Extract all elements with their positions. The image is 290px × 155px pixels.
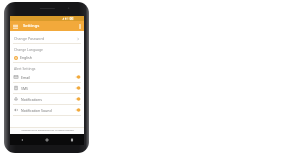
button[interactable]: English xyxy=(10,53,84,62)
button[interactable]: SMS toggle xyxy=(75,85,81,91)
staticText: Email xyxy=(21,75,30,80)
button[interactable]: Back xyxy=(10,134,34,145)
button[interactable]: More options xyxy=(75,21,84,31)
button[interactable]: Notification Sound xyxy=(10,105,84,115)
button[interactable]: Email toggle xyxy=(75,74,81,80)
staticText: Change Password xyxy=(14,36,45,41)
button[interactable]: SMS xyxy=(10,83,84,93)
staticText: SMS xyxy=(21,86,29,91)
staticText: Alert Settings xyxy=(14,66,36,71)
button[interactable]: Open navigation menu xyxy=(10,21,20,31)
button[interactable]: Recent apps xyxy=(59,134,84,145)
staticText: Change Language xyxy=(14,47,43,52)
staticText: Settings xyxy=(23,23,40,29)
button[interactable]: Notifications toggle xyxy=(75,96,81,102)
button[interactable]: Change Password xyxy=(10,34,84,43)
staticText: Notifications xyxy=(21,97,42,102)
staticText: Copyright 2016 available.pvt.ltd. All ri… xyxy=(21,129,74,132)
button[interactable]: Home xyxy=(34,134,59,145)
staticText: English xyxy=(20,55,32,60)
button[interactable]: Notifications xyxy=(10,94,84,104)
button[interactable]: Email xyxy=(10,72,84,82)
button[interactable]: Notification Sound toggle xyxy=(75,107,81,113)
staticText: Notification Sound xyxy=(21,108,52,113)
